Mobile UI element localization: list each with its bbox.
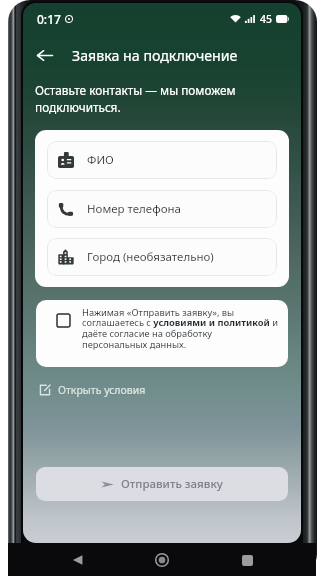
button[interactable]: ФИО (47, 141, 277, 179)
button[interactable]: Отправить заявку (36, 467, 288, 501)
staticText: Город (необязательно) (87, 249, 214, 265)
button[interactable]: Город (необязательно) (47, 238, 277, 276)
button[interactable]: Back (23, 34, 65, 76)
button[interactable]: Recent apps (235, 548, 259, 572)
button[interactable]: Home (150, 548, 174, 572)
staticText: Номер телефона (87, 201, 181, 217)
staticText: Открыть условия (58, 383, 146, 397)
staticText: Заявка на подключение (72, 46, 238, 65)
staticText: ФИО (87, 152, 114, 168)
button[interactable]: Открыть условия (36, 380, 149, 400)
staticText: Отправить заявку (121, 476, 223, 492)
button[interactable]: Нажимая «Отправить заявку», вы соглашает… (36, 300, 288, 367)
staticText: Нажимая «Отправить заявку», вы соглашает… (82, 306, 279, 351)
staticText: 0:17 (37, 11, 61, 27)
staticText: Оставьте контакты — мы поможем подключит… (35, 82, 257, 116)
button[interactable]: Back (65, 548, 89, 572)
button[interactable]: Номер телефона (47, 190, 277, 228)
staticText: 45 (260, 12, 273, 26)
